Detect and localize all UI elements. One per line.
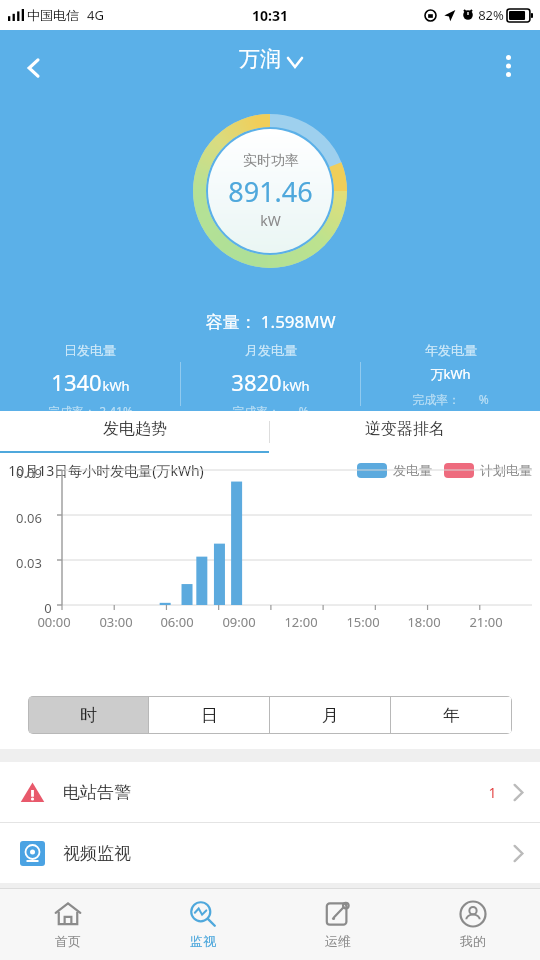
button[interactable]: 时 bbox=[29, 697, 148, 733]
staticText: kWh bbox=[282, 377, 310, 395]
staticText: 完成率： % bbox=[412, 391, 489, 407]
button[interactable]: 逆变器排名 bbox=[270, 411, 540, 453]
staticText: 年发电量 bbox=[425, 342, 477, 358]
staticText: 发电量 bbox=[393, 462, 432, 478]
staticText: 12:00 bbox=[284, 613, 318, 631]
staticText: 1 bbox=[488, 783, 497, 802]
staticText: 逆变器排名 bbox=[365, 419, 445, 439]
staticText: 日发电量 bbox=[64, 342, 116, 358]
staticText: 10月13日每小时发电量(万kWh) bbox=[8, 461, 204, 480]
button[interactable]: 电站告警 bbox=[0, 762, 540, 822]
staticText: 15:00 bbox=[346, 613, 380, 631]
button[interactable]: 运维 bbox=[270, 889, 405, 960]
staticText: 月 bbox=[322, 705, 339, 726]
staticText: 发电趋势 bbox=[103, 419, 167, 439]
staticText: 03:00 bbox=[99, 613, 133, 631]
staticText: 监视 bbox=[190, 933, 216, 949]
staticText: 电站告警 bbox=[63, 782, 131, 803]
staticText: 我的 bbox=[460, 933, 486, 949]
staticText: 年 bbox=[443, 705, 460, 726]
staticText: 万kWh bbox=[430, 365, 471, 383]
staticText: 容量： 1.598MW bbox=[205, 310, 336, 333]
staticText: 中国电信 bbox=[27, 7, 79, 23]
staticText: 实时功率 bbox=[243, 152, 299, 170]
staticText: 0.09 bbox=[16, 464, 42, 482]
button[interactable]: 发电趋势 bbox=[0, 411, 269, 453]
staticText: 0.06 bbox=[16, 509, 42, 527]
staticText: 计划电量 bbox=[480, 462, 532, 478]
staticText: kWh bbox=[102, 377, 130, 395]
staticText: kW bbox=[260, 211, 281, 230]
staticText: 运维 bbox=[325, 933, 351, 949]
staticText: 首页 bbox=[55, 933, 81, 949]
staticText: 4G bbox=[87, 6, 104, 24]
staticText: 06:00 bbox=[160, 613, 194, 631]
staticText: 09:00 bbox=[222, 613, 256, 631]
button[interactable]: Back bbox=[10, 44, 58, 92]
staticText: 82% bbox=[478, 6, 504, 24]
button[interactable]: 视频监视 bbox=[0, 823, 540, 883]
button[interactable]: More options bbox=[486, 44, 530, 88]
staticText: 时 bbox=[80, 705, 97, 726]
staticText: 3820 bbox=[231, 367, 282, 397]
button[interactable]: 监视 bbox=[135, 889, 270, 960]
staticText: 完成率： 2.41% bbox=[48, 403, 133, 419]
staticText: 日 bbox=[201, 705, 218, 726]
button[interactable]: 年 bbox=[391, 697, 511, 733]
staticText: 视频监视 bbox=[63, 843, 131, 864]
button[interactable]: 首页 bbox=[0, 889, 135, 960]
staticText: 万润 bbox=[239, 46, 281, 72]
button[interactable]: 日 bbox=[149, 697, 269, 733]
button[interactable]: 月 bbox=[270, 697, 390, 733]
staticText: 18:00 bbox=[407, 613, 441, 631]
staticText: 21:00 bbox=[469, 613, 503, 631]
staticText: 月发电量 bbox=[245, 342, 297, 358]
staticText: 891.46 bbox=[228, 173, 313, 210]
staticText: 0 bbox=[44, 599, 52, 617]
staticText: 00:00 bbox=[37, 613, 71, 631]
button[interactable]: 我的 bbox=[405, 889, 540, 960]
staticText: 10:31 bbox=[252, 6, 288, 25]
staticText: 1340 bbox=[51, 367, 102, 397]
staticText: 完成率： % bbox=[232, 403, 309, 419]
staticText: 0.03 bbox=[16, 554, 42, 572]
button[interactable]: 万润 bbox=[239, 46, 302, 72]
